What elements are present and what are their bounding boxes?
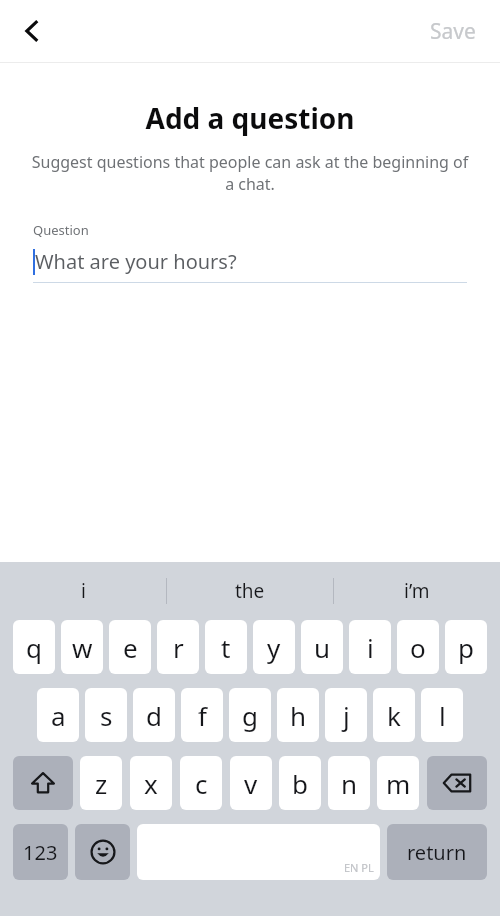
button[interactable]: b: [279, 756, 321, 810]
button[interactable]: Back: [6, 5, 58, 57]
button[interactable]: i’m: [334, 562, 500, 620]
button[interactable]: n: [328, 756, 370, 810]
staticText: r: [173, 630, 184, 665]
button[interactable]: y: [253, 620, 295, 674]
button[interactable]: q: [13, 620, 55, 674]
staticText: p: [458, 630, 474, 665]
staticText: Question: [33, 221, 89, 239]
staticText: j: [343, 698, 350, 733]
staticText: c: [195, 766, 208, 801]
staticText: t: [221, 630, 231, 665]
button[interactable]: s: [85, 688, 127, 742]
button[interactable]: h: [277, 688, 319, 742]
staticText: o: [410, 630, 426, 665]
button[interactable]: 123: [13, 824, 68, 880]
staticText: q: [26, 630, 42, 665]
button[interactable]: t: [205, 620, 247, 674]
button[interactable]: g: [229, 688, 271, 742]
staticText: u: [314, 630, 331, 665]
staticText: i: [81, 578, 86, 604]
staticText: 123: [23, 839, 58, 866]
staticText: h: [290, 698, 307, 733]
button[interactable]: r: [157, 620, 199, 674]
button[interactable]: u: [301, 620, 343, 674]
button[interactable]: Save: [422, 9, 484, 54]
staticText: w: [72, 630, 93, 665]
button[interactable]: w: [61, 620, 103, 674]
staticText: e: [123, 630, 138, 665]
button[interactable]: the: [167, 562, 333, 620]
button[interactable]: p: [445, 620, 487, 674]
staticText: Suggest questions that people can ask at…: [28, 151, 472, 195]
staticText: i’m: [404, 578, 430, 604]
button[interactable]: d: [133, 688, 175, 742]
button[interactable]: a: [37, 688, 79, 742]
staticText: k: [387, 698, 401, 733]
staticText: EN PL: [344, 860, 374, 875]
staticText: m: [386, 766, 411, 801]
button[interactable]: z: [80, 756, 122, 810]
button[interactable]: f: [181, 688, 223, 742]
button[interactable]: v: [230, 756, 272, 810]
button[interactable]: x: [130, 756, 172, 810]
staticText: Save: [430, 17, 476, 46]
staticText: i: [367, 630, 374, 665]
button[interactable]: i: [349, 620, 391, 674]
button[interactable]: m: [377, 756, 419, 810]
button[interactable]: i: [0, 562, 166, 620]
staticText: d: [146, 698, 162, 733]
button[interactable]: Space: [137, 824, 380, 880]
staticText: x: [144, 766, 158, 801]
staticText: the: [235, 578, 265, 604]
staticText: l: [439, 698, 446, 733]
button[interactable]: e: [109, 620, 151, 674]
staticText: g: [242, 698, 258, 733]
button[interactable]: l: [421, 688, 463, 742]
button[interactable]: return: [387, 824, 487, 880]
staticText: s: [100, 698, 113, 733]
staticText: z: [95, 766, 108, 801]
staticText: What are your hours?: [35, 248, 237, 275]
staticText: y: [267, 630, 281, 665]
staticText: Add a question: [0, 99, 500, 137]
button[interactable]: Backspace: [427, 756, 487, 810]
button[interactable]: k: [373, 688, 415, 742]
staticText: n: [341, 766, 358, 801]
button[interactable]: Shift: [13, 756, 73, 810]
button[interactable]: Question: [33, 221, 467, 283]
button[interactable]: j: [325, 688, 367, 742]
button[interactable]: Emoji: [75, 824, 130, 880]
staticText: return: [407, 839, 467, 866]
button[interactable]: o: [397, 620, 439, 674]
staticText: v: [244, 766, 258, 801]
staticText: a: [51, 698, 66, 733]
staticText: f: [198, 698, 207, 733]
staticText: b: [292, 766, 308, 801]
button[interactable]: c: [180, 756, 222, 810]
